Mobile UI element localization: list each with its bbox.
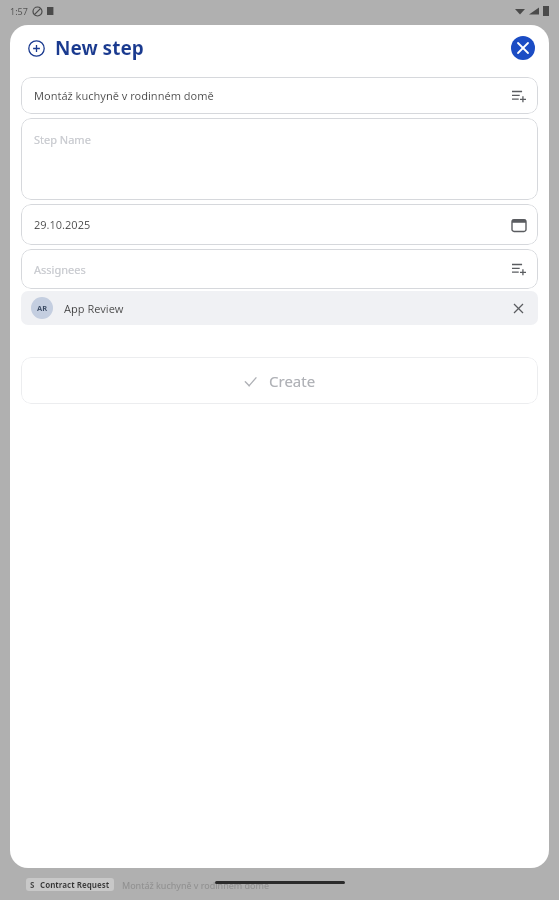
staticText: Montáž kuchyně v rodinném domě [122, 879, 270, 891]
button[interactable]: S [30, 879, 110, 890]
staticText: Contract Request [40, 879, 110, 890]
other: Add [512, 89, 526, 103]
button[interactable]: AR [21, 291, 538, 325]
other: Add [512, 262, 526, 276]
other: Pick date [512, 218, 526, 232]
staticText: New step [55, 35, 144, 61]
button[interactable]: Step Name [21, 118, 538, 200]
staticText: Create [269, 371, 316, 391]
button[interactable]: Create [21, 357, 538, 404]
button[interactable]: New step [28, 35, 144, 61]
staticText: Montáž kuchyně v rodinném domě [34, 88, 214, 103]
button[interactable]: Montáž kuchyně v rodinném domě [21, 77, 538, 114]
button[interactable]: Close [511, 36, 535, 60]
staticText: S [30, 879, 35, 890]
button[interactable]: Assignees [21, 249, 538, 289]
staticText: Step Name [34, 132, 91, 147]
staticText: Assignees [34, 262, 86, 277]
button[interactable]: 29.10.2025 [21, 204, 538, 245]
staticText: 1:57 [10, 5, 28, 17]
button[interactable]: Remove assignee [510, 300, 526, 316]
staticText: AR [37, 303, 48, 313]
staticText: 29.10.2025 [34, 217, 91, 232]
staticText: App Review [64, 301, 124, 316]
